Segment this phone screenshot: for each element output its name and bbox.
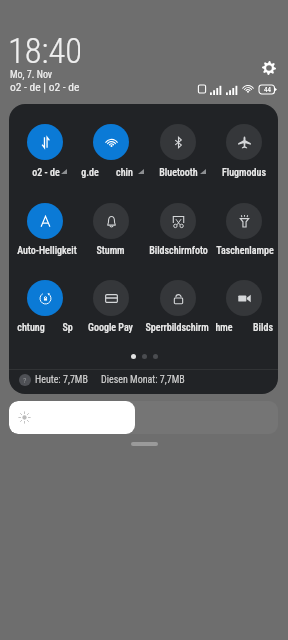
- staticText: Google Pay: [88, 322, 133, 334]
- staticText: chin: [116, 167, 133, 179]
- staticText: Sp: [62, 322, 73, 334]
- staticText: Sperrbildschirm: [145, 322, 209, 334]
- staticText: 44: [264, 86, 271, 94]
- button[interactable]: WIFI: [93, 124, 129, 160]
- button[interactable]: TORCH: [226, 203, 262, 239]
- staticText: Stumm: [96, 245, 125, 257]
- staticText: Bilds: [253, 322, 273, 334]
- button[interactable]: Brightness: [9, 401, 278, 434]
- staticText: Bluetooth: [159, 167, 198, 179]
- button[interactable]: BLUETOOTH: [160, 124, 196, 160]
- staticText: Diesen Monat: 7,7MB: [101, 374, 185, 386]
- staticText: o2 - de: [32, 167, 60, 179]
- staticText: chtung: [17, 322, 45, 334]
- button[interactable]: BELL: [93, 203, 129, 239]
- staticText: Heute: 7,7MB: [35, 374, 88, 386]
- staticText: Mo, 7. Nov: [10, 69, 53, 81]
- button[interactable]: SCREENSHOT: [160, 203, 196, 239]
- staticText: hme: [215, 322, 233, 334]
- button[interactable]: CARD: [93, 280, 129, 316]
- staticText: Taschenlampe: [216, 245, 274, 257]
- button[interactable]: DATA: [27, 124, 63, 160]
- button[interactable]: Settings: [258, 57, 279, 78]
- staticText: g.de: [81, 167, 99, 179]
- button[interactable]: ROTATE: [27, 280, 63, 316]
- staticText: Auto-Helligkeit: [17, 245, 77, 257]
- button[interactable]: PLANE: [226, 124, 262, 160]
- button[interactable]: AUTO: [27, 203, 63, 239]
- button[interactable]: LOCK: [160, 280, 196, 316]
- staticText: Bildschirmfoto: [149, 245, 208, 257]
- staticText: 18:40: [8, 31, 82, 71]
- button[interactable]: CAMERA: [226, 280, 262, 316]
- staticText: ?: [23, 376, 27, 385]
- staticText: o2 - de | o2 - de: [10, 80, 80, 93]
- staticText: Flugmodus: [222, 167, 266, 179]
